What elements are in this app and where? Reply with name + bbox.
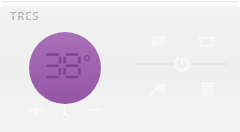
button[interactable]: Hand shower <box>150 82 168 100</box>
button[interactable]: Thermometer <box>58 103 72 117</box>
button[interactable]: Power <box>174 56 190 72</box>
button[interactable]: Rain shower <box>200 81 218 99</box>
button[interactable]: Bath <box>198 35 216 53</box>
button[interactable]: Radiator <box>150 36 168 54</box>
staticText: TRES <box>10 8 40 24</box>
button[interactable]: Temperature display 38 degrees <box>29 32 101 104</box>
